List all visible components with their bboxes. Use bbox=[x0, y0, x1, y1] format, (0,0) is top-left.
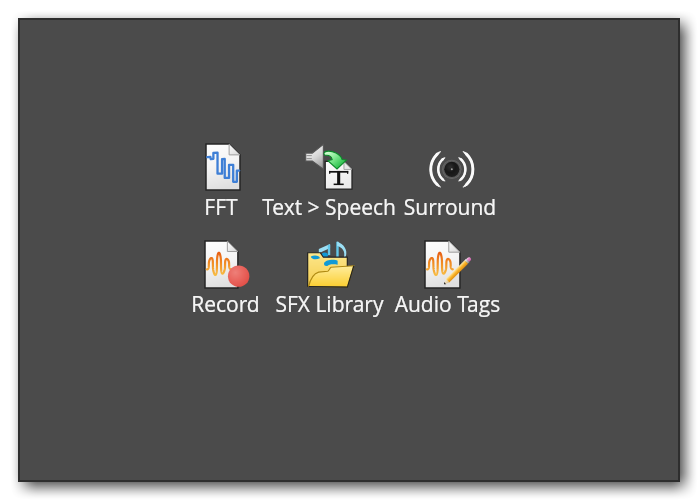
staticText: Surround bbox=[378, 193, 522, 222]
staticText: SFX Library bbox=[248, 290, 411, 319]
staticText: FFT bbox=[174, 193, 268, 222]
button[interactable] bbox=[404, 142, 496, 217]
staticText: Record bbox=[162, 290, 289, 319]
button[interactable] bbox=[188, 236, 263, 314]
button[interactable] bbox=[274, 236, 385, 314]
button[interactable] bbox=[259, 138, 399, 217]
staticText: Audio Tags bbox=[366, 290, 529, 319]
button[interactable] bbox=[200, 139, 244, 218]
staticText: Text > Speech bbox=[233, 193, 425, 222]
button[interactable] bbox=[392, 236, 503, 314]
